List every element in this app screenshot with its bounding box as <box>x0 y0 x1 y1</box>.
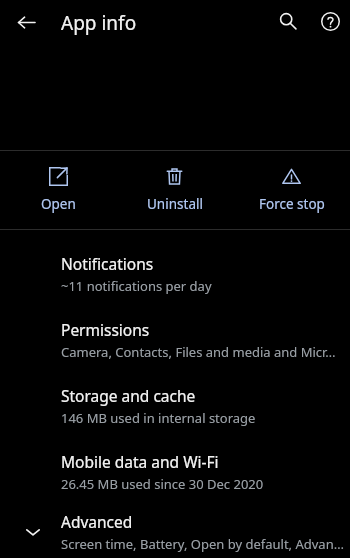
staticText: 146 MB used in internal storage <box>61 409 256 427</box>
button[interactable]: Permissions <box>0 307 350 373</box>
staticText: Permissions <box>61 319 150 340</box>
button[interactable]: Uninstall <box>116 151 233 229</box>
button[interactable]: Force stop <box>233 151 350 229</box>
button[interactable]: Help <box>313 4 347 38</box>
button[interactable]: Advanced <box>0 505 350 558</box>
button[interactable]: Storage and cache <box>0 373 350 439</box>
staticText: Uninstall <box>147 195 203 213</box>
staticText: 26.45 MB used since 30 Dec 2020 <box>61 475 264 493</box>
staticText: Mobile data and Wi-Fi <box>61 451 219 472</box>
staticText: Open <box>41 195 76 213</box>
staticText: Storage and cache <box>61 385 196 406</box>
button[interactable]: Search <box>271 4 305 38</box>
staticText: Notifications <box>61 253 154 274</box>
staticText: Force stop <box>259 195 325 213</box>
staticText: App info <box>61 10 137 36</box>
button[interactable]: Mobile data and Wi-Fi <box>0 439 350 505</box>
button[interactable]: Open <box>0 151 116 229</box>
staticText: Screen time, Battery, Open by default, A… <box>61 535 344 553</box>
staticText: ~11 notifications per day <box>61 277 212 295</box>
button[interactable]: Notifications <box>0 241 350 307</box>
button[interactable]: Back <box>9 5 43 39</box>
staticText: Camera, Contacts, Files and media and Mi… <box>61 343 336 361</box>
staticText: Advanced <box>61 511 133 532</box>
